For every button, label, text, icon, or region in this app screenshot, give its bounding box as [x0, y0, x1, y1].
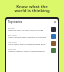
staticText: Markets rally as tech stocks surge	[8, 29, 44, 32]
button[interactable]: BBC News	[8, 33, 56, 40]
staticText: Reuters	[8, 27, 15, 29]
button[interactable]: Reuters	[8, 26, 56, 33]
staticText: Guardian	[8, 48, 16, 50]
button[interactable]: Guardian	[8, 47, 56, 54]
staticText: BBC News	[8, 34, 17, 36]
staticText: Local team wins championship final	[8, 43, 46, 46]
staticText: Health experts share new guidance	[8, 50, 45, 53]
staticText: The Times	[8, 41, 17, 43]
staticText: Top stories	[8, 20, 23, 24]
staticText: New climate deal reached at summit	[8, 36, 47, 39]
button[interactable]: The Times	[8, 40, 56, 47]
staticText: Know what the world is thinking	[0, 4, 64, 14]
